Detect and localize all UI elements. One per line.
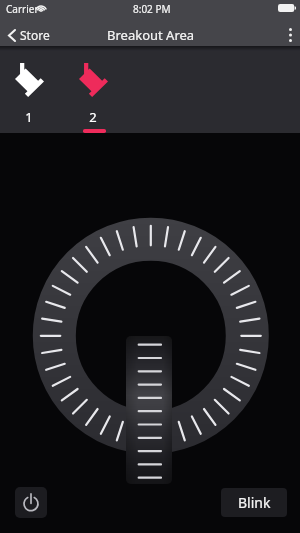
staticText: Carrier bbox=[6, 2, 39, 16]
staticText: Breakout Area bbox=[107, 26, 195, 44]
staticText: 1 bbox=[25, 108, 33, 126]
staticText: 8:02 PM bbox=[133, 2, 171, 16]
staticText: Blink bbox=[238, 493, 271, 512]
button[interactable]: More options bbox=[281, 26, 300, 44]
button[interactable]: Power bbox=[15, 487, 47, 518]
button[interactable]: Blink bbox=[221, 488, 287, 517]
button[interactable]: Brightness slider bbox=[126, 336, 172, 484]
button[interactable]: 2 bbox=[64, 46, 128, 133]
staticText: 2 bbox=[89, 108, 97, 126]
staticText: Store bbox=[20, 27, 50, 43]
button[interactable]: Store bbox=[0, 25, 58, 45]
button[interactable]: 1 bbox=[0, 46, 64, 133]
